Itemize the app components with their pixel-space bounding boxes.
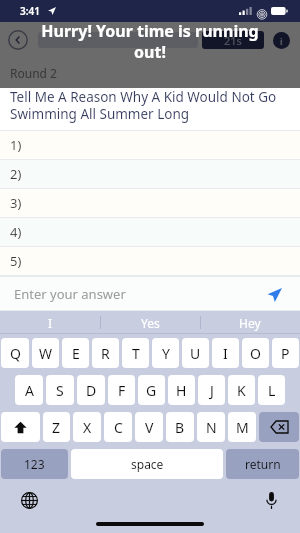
button[interactable]: H — [168, 375, 195, 405]
button[interactable]: 21s — [202, 31, 264, 49]
staticText: 21s — [224, 33, 242, 48]
button[interactable]: return — [226, 449, 299, 479]
button[interactable]: 5) — [0, 247, 300, 275]
button[interactable]: Y — [152, 338, 179, 368]
button[interactable]: S — [46, 375, 74, 405]
button[interactable]: 2) — [0, 160, 300, 188]
button[interactable]: C — [104, 412, 132, 442]
button[interactable]: P — [272, 338, 299, 368]
staticText: return — [245, 456, 281, 472]
button[interactable]: T — [122, 338, 149, 368]
staticText: B — [175, 418, 185, 437]
button[interactable]: Info — [273, 32, 290, 49]
staticText: space — [131, 456, 164, 472]
staticText: Hey — [239, 315, 261, 331]
staticText: Y — [162, 344, 170, 363]
button[interactable]: U — [182, 338, 209, 368]
button[interactable]: Change keyboard — [18, 489, 40, 511]
staticText: 1) — [10, 136, 22, 154]
button[interactable]: W — [32, 338, 59, 368]
staticText: 3:41 — [20, 4, 40, 18]
button[interactable]: Dictation — [260, 489, 282, 511]
staticText: K — [237, 381, 246, 400]
staticText: W — [39, 344, 53, 363]
button[interactable]: Hey — [200, 311, 300, 334]
staticText: X — [83, 418, 92, 437]
button[interactable]: Z — [43, 412, 70, 442]
staticText: D — [86, 381, 97, 400]
button[interactable]: Shift — [1, 412, 40, 442]
button[interactable]: Q — [1, 338, 29, 368]
staticText: 4) — [10, 223, 22, 241]
staticText: H — [176, 381, 187, 400]
button[interactable]: Send — [264, 284, 284, 304]
button[interactable]: Back — [8, 30, 28, 50]
staticText: 123 — [24, 456, 45, 472]
staticText: Q — [10, 344, 21, 363]
staticText: Enter your answer — [14, 285, 126, 303]
button[interactable]: L — [258, 375, 285, 405]
button[interactable]: B — [166, 412, 194, 442]
button[interactable]: G — [138, 375, 165, 405]
button[interactable]: O — [242, 338, 269, 368]
button[interactable]: 3) — [0, 189, 300, 217]
button[interactable]: J — [198, 375, 225, 405]
button[interactable]: Backspace — [259, 412, 299, 442]
button[interactable]: M — [228, 412, 256, 442]
button[interactable]: F — [108, 375, 135, 405]
staticText: U — [190, 344, 201, 363]
button[interactable]: Yes — [100, 311, 200, 334]
button[interactable]: 123 — [1, 449, 68, 479]
staticText: i — [280, 35, 283, 47]
staticText: S — [56, 381, 64, 400]
staticText: O — [250, 344, 261, 363]
button[interactable]: I — [0, 311, 100, 334]
button[interactable]: E — [62, 338, 89, 368]
button[interactable]: R — [92, 338, 119, 368]
staticText: L — [268, 381, 276, 400]
staticText: Hurry! Your time is running out! — [24, 20, 276, 63]
staticText: V — [145, 418, 154, 437]
staticText: 5) — [10, 252, 22, 270]
button[interactable]: 4) — [0, 218, 300, 246]
staticText: Tell Me A Reason Why A Kid Would Not Go … — [10, 88, 290, 123]
staticText: R — [101, 344, 110, 363]
staticText: P — [281, 344, 290, 363]
staticText: N — [206, 418, 217, 437]
button[interactable]: D — [77, 375, 105, 405]
staticText: G — [146, 381, 157, 400]
button[interactable]: K — [228, 375, 255, 405]
staticText: M — [236, 418, 249, 437]
staticText: 2) — [10, 165, 22, 183]
button[interactable]: A — [15, 375, 43, 405]
button[interactable]: space — [71, 449, 223, 479]
staticText: E — [72, 344, 80, 363]
staticText: A — [25, 381, 34, 400]
button[interactable]: Enter your answer — [0, 277, 300, 310]
button[interactable]: X — [73, 412, 101, 442]
staticText: J — [210, 381, 214, 400]
staticText: I — [223, 344, 228, 363]
staticText: F — [118, 381, 126, 400]
staticText: I — [48, 315, 53, 331]
button[interactable]: 1) — [0, 131, 300, 159]
button[interactable]: V — [135, 412, 163, 442]
staticText: T — [132, 344, 140, 363]
button[interactable]: I — [212, 338, 239, 368]
staticText: 3) — [10, 194, 22, 212]
button[interactable]: N — [197, 412, 225, 442]
staticText: Round 2 — [10, 65, 57, 81]
staticText: Z — [52, 418, 61, 437]
staticText: Yes — [141, 315, 160, 331]
staticText: C — [114, 418, 123, 437]
